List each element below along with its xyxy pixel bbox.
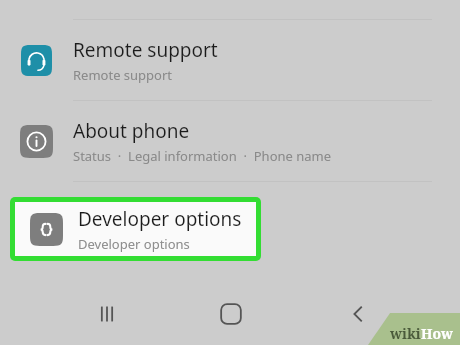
staticText: Remote support: [73, 37, 218, 63]
button[interactable]: About phone: [0, 101, 460, 181]
button[interactable]: Remote support: [0, 20, 460, 100]
button[interactable]: Home: [207, 290, 255, 338]
staticText: How: [421, 324, 454, 343]
staticText: Remote support: [73, 66, 173, 84]
staticText: About phone: [73, 118, 190, 144]
staticText: Developer options: [78, 206, 242, 232]
button[interactable]: Back: [334, 290, 382, 338]
staticText: Status · Legal information · Phone name: [73, 147, 332, 165]
staticText: wiki: [390, 324, 421, 343]
button[interactable]: Developer options: [15, 202, 256, 256]
staticText: Developer options: [78, 235, 190, 253]
button[interactable]: Recents: [83, 290, 131, 338]
